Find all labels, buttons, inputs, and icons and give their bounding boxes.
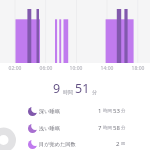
button[interactable]: 目が覚めた回数 xyxy=(0,136,150,150)
staticText: 1 xyxy=(98,107,102,115)
button[interactable]: 深い睡眠 xyxy=(0,103,150,119)
staticText: 分 xyxy=(92,89,97,95)
staticText: 7 xyxy=(98,124,102,132)
staticText: 10:00 xyxy=(66,65,86,72)
staticText: 時間 xyxy=(103,108,112,114)
staticText: 目が覚めた回数 xyxy=(39,141,76,148)
staticText: 51 xyxy=(75,80,90,97)
staticText: 58 xyxy=(113,124,120,132)
staticText: 回 xyxy=(121,141,126,147)
staticText: 分 xyxy=(121,108,126,114)
staticText: 深い睡眠 xyxy=(39,108,60,115)
staticText: 9 xyxy=(53,80,61,97)
staticText: 53 xyxy=(113,107,120,115)
staticText: 時間 xyxy=(63,89,73,95)
staticText: 2 xyxy=(116,140,120,148)
staticText: 14:00 xyxy=(97,65,117,72)
staticText: 時間 xyxy=(103,125,112,131)
staticText: 分 xyxy=(121,125,126,131)
staticText: 18:00 xyxy=(128,65,148,72)
staticText: 浅い睡眠 xyxy=(39,125,60,132)
staticText: 06:00 xyxy=(36,65,56,72)
staticText: 02:00 xyxy=(5,65,25,72)
button[interactable]: 浅い睡眠 xyxy=(0,120,150,136)
